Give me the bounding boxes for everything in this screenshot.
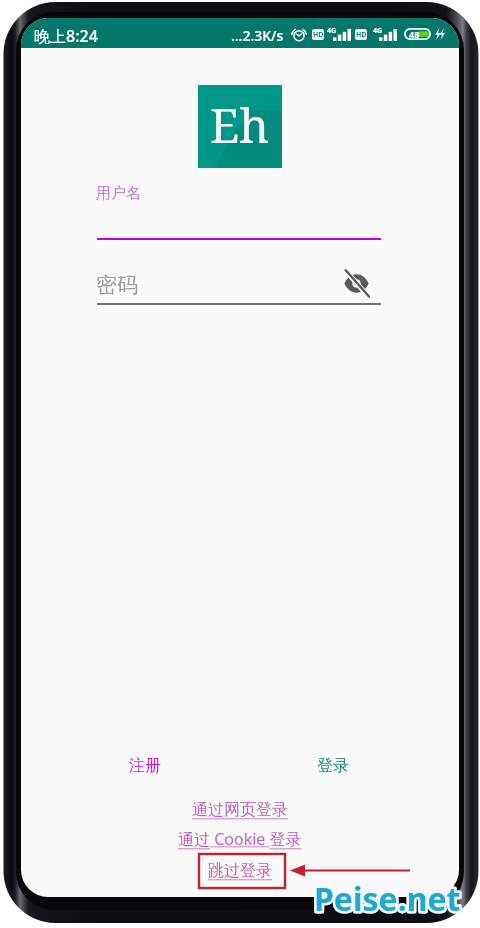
- staticText: ...2.3K/s: [231, 26, 284, 45]
- button[interactable]: 登录: [311, 752, 355, 780]
- staticText: 通过 Cookie 登录: [178, 828, 302, 850]
- staticText: 4G: [373, 26, 383, 36]
- staticText: Peise.net: [314, 877, 461, 921]
- button[interactable]: 通过 Cookie 登录: [178, 828, 302, 850]
- button[interactable]: 通过网页登录: [192, 800, 288, 820]
- button[interactable]: 注册: [123, 752, 167, 780]
- staticText: Peise.net: [314, 877, 461, 921]
- staticText: 晚上8:24: [34, 25, 98, 47]
- button[interactable]: 跳过登录: [208, 861, 272, 881]
- staticText: Eh: [210, 93, 270, 157]
- staticText: 用户名: [96, 184, 141, 203]
- staticText: 注册: [129, 756, 161, 776]
- staticText: 登录: [317, 756, 349, 776]
- staticText: HD: [313, 30, 324, 40]
- staticText: 4G: [327, 26, 337, 36]
- staticText: HD: [356, 30, 367, 40]
- staticText: 通过网页登录: [192, 800, 288, 820]
- button[interactable]: Show password: [336, 263, 376, 303]
- staticText: 48: [409, 28, 420, 40]
- staticText: 跳过登录: [208, 861, 272, 881]
- staticText: 密码: [96, 272, 138, 298]
